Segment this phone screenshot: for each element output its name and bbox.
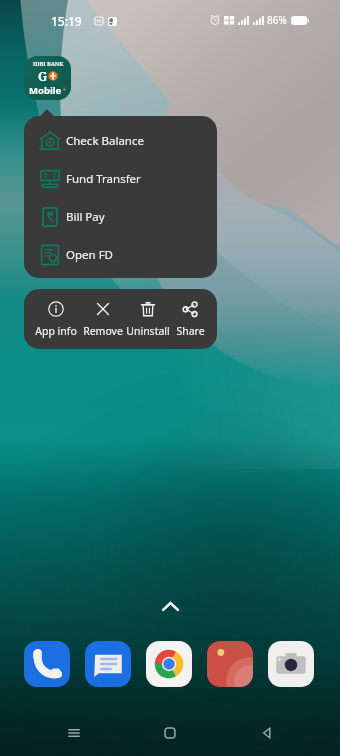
button[interactable]: Camera — [268, 641, 314, 687]
staticText: Mobile — [29, 84, 62, 97]
staticText: Uninstall — [126, 324, 170, 338]
button[interactable]: Fund Transfer — [24, 160, 217, 198]
staticText: Bill Pay — [66, 209, 105, 225]
button[interactable]: Chrome — [146, 641, 192, 687]
button[interactable]: Messages — [85, 641, 131, 687]
staticText: Open FD — [66, 247, 114, 263]
button[interactable]: Gallery — [207, 641, 253, 687]
button[interactable]: Recent apps — [51, 710, 97, 756]
button[interactable]: Back — [244, 710, 290, 756]
button[interactable]: Home — [147, 710, 193, 756]
button[interactable]: Uninstall — [125, 289, 171, 349]
button[interactable]: Open FD — [24, 236, 217, 274]
button[interactable]: Share — [171, 289, 209, 349]
button[interactable]: Check Balance — [24, 122, 217, 160]
button[interactable]: App info — [32, 289, 80, 349]
staticText: Check Balance — [66, 133, 144, 149]
button[interactable]: Bill Pay — [24, 198, 217, 236]
staticText: Remove — [83, 324, 123, 338]
staticText: Share — [176, 324, 205, 338]
staticText: G — [38, 68, 48, 84]
button[interactable]: Remove — [80, 289, 125, 349]
button[interactable]: IDBI BANK — [24, 56, 71, 100]
staticText: 86% — [267, 13, 287, 27]
staticText: + — [62, 84, 67, 94]
staticText: IDBI BANK — [33, 60, 64, 68]
staticText: App info — [35, 324, 77, 338]
button[interactable]: Phone — [24, 641, 70, 687]
staticText: 15:19 — [51, 13, 82, 29]
staticText: Fund Transfer — [66, 171, 141, 187]
